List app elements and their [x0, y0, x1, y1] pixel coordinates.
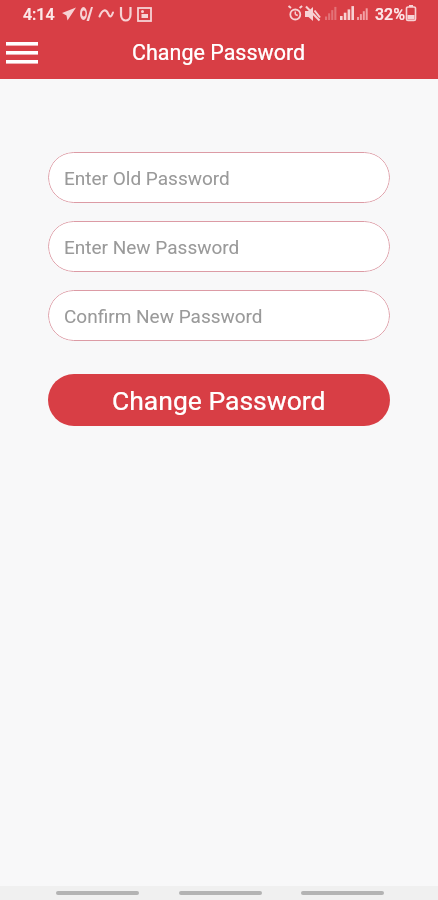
- button[interactable]: Open navigation menu: [0, 29, 46, 77]
- staticText: Enter Old Password: [64, 167, 230, 189]
- staticText: Enter New Password: [64, 236, 240, 258]
- button[interactable]: Enter New Password: [48, 221, 390, 272]
- button[interactable]: Change Password: [48, 374, 390, 426]
- staticText: Confirm New Password: [64, 305, 263, 327]
- staticText: 4:14: [23, 5, 55, 24]
- staticText: Change Password: [132, 40, 306, 65]
- staticText: Change Password: [112, 385, 326, 416]
- staticText: 32%: [375, 5, 405, 24]
- button[interactable]: Confirm New Password: [48, 290, 390, 341]
- button[interactable]: Enter Old Password: [48, 152, 390, 203]
